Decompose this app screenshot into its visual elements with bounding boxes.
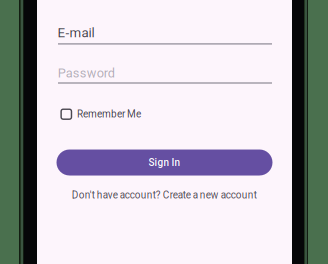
staticText: Don't have account? Create a new account [72,189,257,201]
button[interactable]: Password [58,62,272,88]
staticText: Remember Me [77,108,141,120]
button[interactable]: Sign In [56,149,272,175]
staticText: E-mail [57,25,94,41]
button[interactable]: E-mail [58,22,272,48]
staticText: Sign In [148,157,180,168]
button[interactable]: Don't have account? Create a new account [72,189,257,201]
staticText: Password [58,65,115,80]
button[interactable]: Remember Me [60,108,141,120]
